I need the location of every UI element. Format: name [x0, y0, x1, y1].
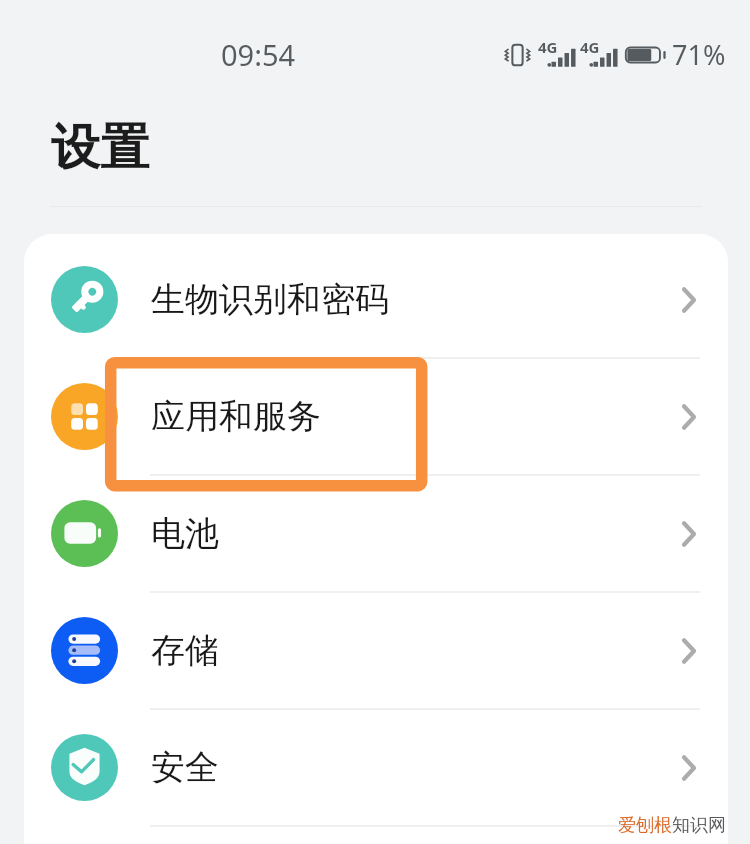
staticText: 电池 [151, 512, 219, 555]
button[interactable]: 安全 [24, 709, 728, 826]
staticText: 71% [672, 36, 726, 73]
button[interactable]: 电池 [24, 475, 728, 592]
staticText: 存储 [151, 629, 219, 672]
staticText: 09:54 [221, 35, 296, 74]
staticText: 应用和服务 [151, 395, 321, 438]
button[interactable]: 生物识别和密码 [24, 241, 728, 358]
staticText: 安全 [151, 746, 219, 789]
staticText: 4G [580, 37, 600, 57]
staticText: 知识网 [672, 814, 726, 837]
staticText: 爱刨根 [618, 814, 672, 837]
staticText: 设置 [51, 117, 149, 179]
staticText: 4G [538, 37, 558, 57]
button[interactable]: 存储 [24, 592, 728, 709]
staticText: 生物识别和密码 [151, 278, 389, 321]
button[interactable]: 应用和服务 [24, 358, 728, 475]
